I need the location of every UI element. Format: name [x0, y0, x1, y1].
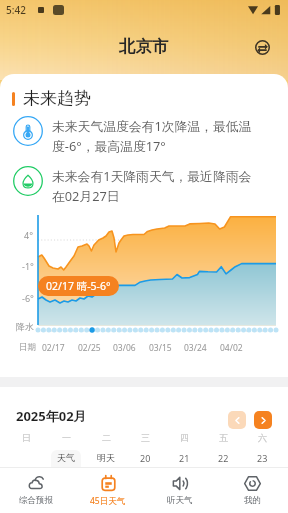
staticText: 4° [24, 229, 34, 241]
button[interactable]: 综合预报 [0, 468, 72, 513]
button[interactable]: 我的 [216, 468, 288, 513]
staticText: -6° [22, 292, 34, 304]
staticText: 四 [180, 432, 189, 443]
staticText: 5:42 [6, 3, 26, 17]
staticText: 降水 [16, 321, 34, 332]
staticText: 未来天气温度会有1次降温，最低温度-6°，最高温度17° [52, 117, 255, 155]
button[interactable]: Previous month [228, 411, 246, 429]
staticText: 未来趋势 [23, 88, 91, 109]
staticText: 未来会有1天降雨天气，最近降雨会在02月27日 [52, 167, 255, 205]
staticText: 二 [102, 432, 111, 443]
button[interactable]: 明天 [86, 452, 126, 486]
staticText: 明天 [97, 452, 115, 463]
staticText: 02/17 [42, 342, 65, 354]
staticText: 日 [22, 432, 31, 443]
button[interactable]: 20 [126, 452, 165, 486]
staticText: 北京市 [119, 36, 169, 57]
staticText: 综合预报 [19, 495, 53, 506]
button[interactable]: 21 [165, 452, 204, 486]
staticText: 03/24 [184, 342, 207, 354]
staticText: 五 [219, 432, 228, 443]
button[interactable]: 天气 [46, 452, 86, 486]
staticText: 21 [179, 452, 190, 464]
staticText: 04/02 [220, 342, 243, 354]
staticText: 22 [218, 452, 229, 464]
button[interactable]: Next month [254, 411, 272, 429]
button[interactable]: 22 [204, 452, 243, 486]
staticText: 03/15 [149, 342, 172, 354]
staticText: 45日天气 [90, 495, 126, 507]
staticText: 02/17 晴-5-6° [46, 279, 111, 293]
staticText: 2025年02月 [16, 407, 87, 425]
staticText: 六 [258, 432, 267, 443]
staticText: -1° [22, 260, 34, 272]
staticText: 日期 [19, 342, 36, 353]
staticText: 一 [62, 432, 71, 443]
staticText: 听天气 [167, 495, 193, 506]
staticText: 23 [257, 452, 268, 464]
button[interactable] [6, 452, 46, 486]
button[interactable]: Switch city [250, 35, 274, 59]
staticText: 天气 [57, 452, 75, 463]
staticText: 02/25 [78, 342, 101, 354]
staticText: 03/06 [113, 342, 136, 354]
staticText: 三 [141, 432, 150, 443]
staticText: 我的 [244, 495, 261, 506]
button[interactable]: 45日天气 [72, 468, 144, 513]
staticText: 20 [140, 452, 151, 464]
button[interactable]: 23 [243, 452, 282, 486]
button[interactable]: 听天气 [144, 468, 216, 513]
